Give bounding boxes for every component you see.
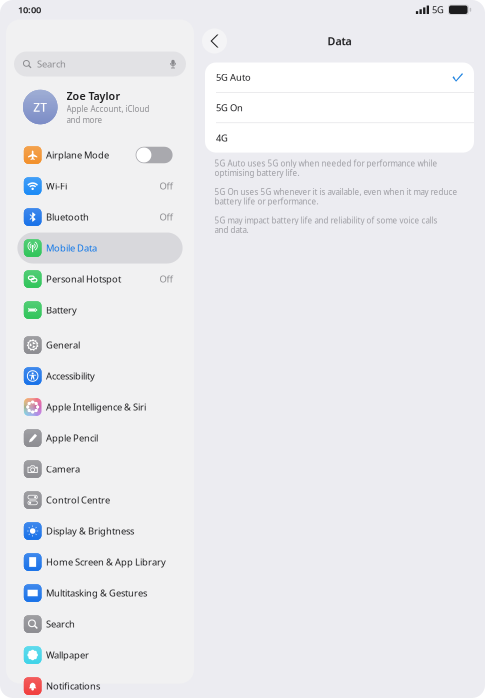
button[interactable]: 5G Auto: [205, 62, 474, 92]
button[interactable]: Display & Brightness: [17, 515, 183, 546]
staticText: 4G: [216, 132, 228, 144]
staticText: 10:00: [18, 4, 41, 16]
button[interactable]: General: [17, 329, 183, 360]
button[interactable]: Personal Hotspot: [17, 263, 183, 294]
staticText: Off: [160, 180, 173, 192]
staticText: 5G Auto uses 5G only when needed for per…: [214, 158, 437, 169]
staticText: Display & Brightness: [46, 525, 134, 537]
staticText: Mobile Data: [46, 242, 97, 254]
staticText: Wallpaper: [46, 649, 89, 661]
button[interactable]: Apple Intelligence & Siri: [17, 391, 183, 422]
button[interactable]: Home Screen & App Library: [17, 546, 183, 577]
button[interactable]: Bluetooth: [17, 201, 183, 232]
staticText: Off: [160, 211, 173, 223]
button[interactable]: Camera: [17, 453, 183, 484]
staticText: Bluetooth: [46, 211, 89, 223]
staticText: Apple Intelligence & Siri: [46, 401, 146, 413]
staticText: Battery: [46, 304, 77, 316]
staticText: 5G: [432, 4, 444, 16]
button[interactable]: Airplane Mode: [17, 139, 183, 170]
staticText: ZT: [33, 99, 47, 115]
button[interactable]: Search: [14, 51, 186, 76]
staticText: General: [46, 339, 80, 351]
button[interactable]: ZT: [14, 81, 186, 132]
staticText: Home Screen & App Library: [46, 556, 166, 568]
staticText: Search: [37, 58, 66, 70]
button[interactable]: 5G On: [205, 93, 474, 122]
staticText: Notifications: [46, 680, 100, 692]
button[interactable]: Search: [17, 608, 183, 639]
button[interactable]: Mobile Data: [17, 232, 183, 263]
button[interactable]: Notifications: [17, 670, 183, 698]
button[interactable]: Battery: [17, 294, 183, 325]
button[interactable]: 4G: [205, 123, 474, 153]
staticText: and data.: [214, 224, 248, 235]
staticText: 5G Auto: [216, 71, 251, 83]
staticText: Multitasking & Gestures: [46, 587, 147, 599]
staticText: Data: [327, 34, 351, 48]
button[interactable]: Wallpaper: [17, 639, 183, 670]
staticText: Zoe Taylor: [66, 89, 120, 103]
button[interactable]: Multitasking & Gestures: [17, 577, 183, 608]
staticText: Personal Hotspot: [46, 273, 121, 285]
staticText: optimising battery life.: [214, 167, 299, 178]
staticText: and more: [66, 115, 102, 125]
button[interactable]: Wi-Fi: [17, 170, 183, 201]
staticText: Airplane Mode: [46, 149, 109, 161]
button[interactable]: Apple Pencil: [17, 422, 183, 453]
staticText: Wi-Fi: [46, 180, 67, 192]
button[interactable]: Back: [202, 28, 227, 53]
staticText: 5G On uses 5G whenever it is available, …: [214, 186, 457, 197]
staticText: Off: [160, 273, 173, 285]
staticText: 5G may impact battery life and reliabili…: [214, 215, 437, 226]
staticText: Control Centre: [46, 494, 110, 506]
staticText: 5G On: [216, 101, 243, 114]
button[interactable]: Accessibility: [17, 360, 183, 391]
staticText: Search: [46, 618, 75, 630]
staticText: Camera: [46, 463, 80, 475]
staticText: Accessibility: [46, 370, 95, 382]
button[interactable]: Control Centre: [17, 484, 183, 515]
staticText: battery life or performance.: [214, 196, 318, 207]
staticText: Apple Account, iCloud: [66, 103, 149, 114]
staticText: Apple Pencil: [46, 432, 98, 444]
